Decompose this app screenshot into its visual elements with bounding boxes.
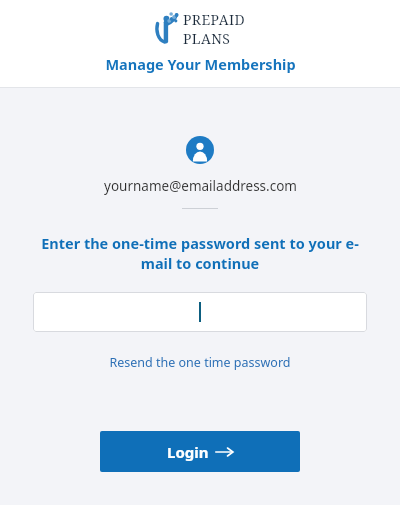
button[interactable]: Login	[100, 431, 300, 472]
staticText: Resend the one time password	[109, 354, 291, 371]
button[interactable]: Resend the one time password	[103, 351, 297, 374]
staticText: PREPAID	[183, 10, 246, 29]
staticText: Enter the one-time password sent to your…	[26, 233, 374, 274]
staticText: Manage Your Membership	[105, 54, 296, 74]
staticText: PLANS	[183, 29, 231, 48]
staticText: yourname@emailaddress.com	[104, 177, 297, 195]
staticText: Login	[167, 442, 209, 462]
button[interactable]	[33, 292, 367, 332]
